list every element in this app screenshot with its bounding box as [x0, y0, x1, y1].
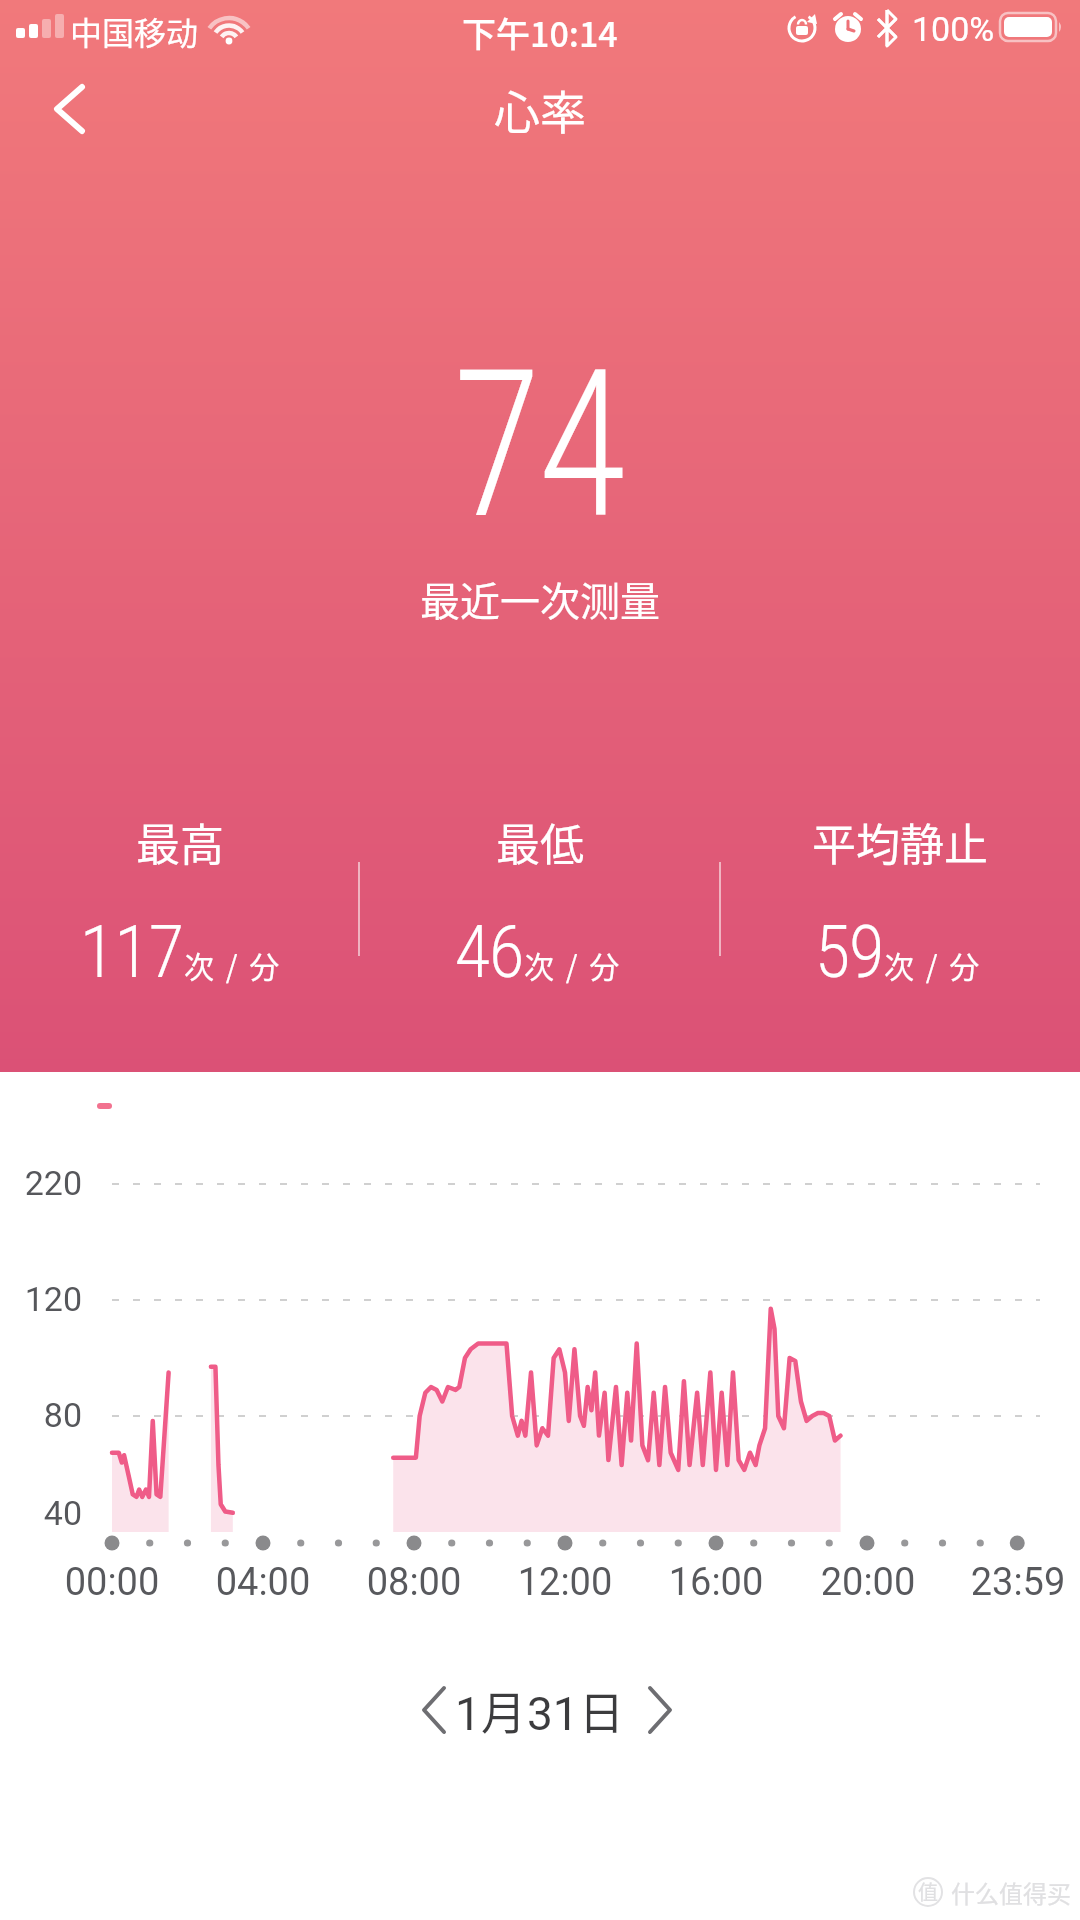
button[interactable] [400, 1672, 476, 1748]
staticText: 31 [527, 1687, 579, 1741]
staticText: 74 [454, 325, 625, 565]
staticText: 最近一次测量 [420, 570, 660, 628]
staticText: 心率 [494, 76, 586, 143]
staticText: 月 [481, 1678, 527, 1743]
staticText: 1 [455, 1687, 481, 1741]
staticText: 80 [0, 1395, 82, 1435]
staticText: 次 / 分 [884, 943, 982, 986]
button[interactable] [618, 1672, 694, 1748]
staticText: 117 [80, 909, 184, 995]
staticText: 59 [815, 909, 884, 995]
staticText: 最高 [136, 810, 224, 874]
staticText: 平均静止 [812, 810, 988, 874]
staticText: 12:00 [495, 1560, 635, 1605]
staticText: 46 [455, 909, 524, 995]
staticText: 23:59 [948, 1560, 1080, 1605]
staticText: 最低 [496, 810, 584, 874]
staticText: 40 [0, 1493, 82, 1533]
staticText: 00:00 [42, 1560, 182, 1605]
staticText: 什么值得买 [951, 1875, 1071, 1910]
button[interactable]: 1 [455, 1678, 625, 1743]
staticText: 中国移动 [70, 8, 199, 54]
staticText: 100% [912, 9, 995, 49]
staticText: 08:00 [344, 1560, 484, 1605]
staticText: 下午10:14 [462, 8, 618, 57]
staticText: 次 / 分 [184, 943, 282, 986]
staticText: 04:00 [193, 1560, 333, 1605]
staticText: 16:00 [646, 1560, 786, 1605]
staticText: 次 / 分 [524, 943, 622, 986]
button[interactable] [36, 76, 102, 142]
staticText: 120 [0, 1279, 82, 1319]
staticText: 日 [579, 1678, 625, 1743]
staticText: 220 [0, 1163, 82, 1203]
staticText: 值 [918, 1877, 938, 1906]
staticText: 20:00 [798, 1560, 938, 1605]
